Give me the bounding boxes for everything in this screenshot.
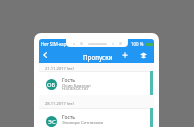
staticText: Осип Бразгин <box>62 82 91 88</box>
button[interactable]: Layers <box>137 49 149 61</box>
staticText: Пропуски <box>83 53 113 61</box>
button[interactable]: Add <box>119 49 131 61</box>
staticText: Нет SIM-карты <box>41 41 72 47</box>
staticText: НЗЛЕХОСТ87 <box>62 85 89 91</box>
staticText: Эльвира Ситникова <box>62 119 104 125</box>
button[interactable]: ОБ <box>39 71 154 95</box>
staticText: ОБ <box>47 81 56 89</box>
staticText: Гость <box>62 77 76 84</box>
button[interactable]: Back <box>39 49 51 61</box>
staticText: 21.11.2017 (вт) <box>45 66 74 72</box>
staticText: 100 % <box>131 41 144 47</box>
staticText: 28.11.2017 (вт) <box>45 101 74 107</box>
staticText: Гость <box>62 114 76 121</box>
staticText: ЭС <box>48 118 56 126</box>
button[interactable]: ЭС <box>39 108 154 127</box>
